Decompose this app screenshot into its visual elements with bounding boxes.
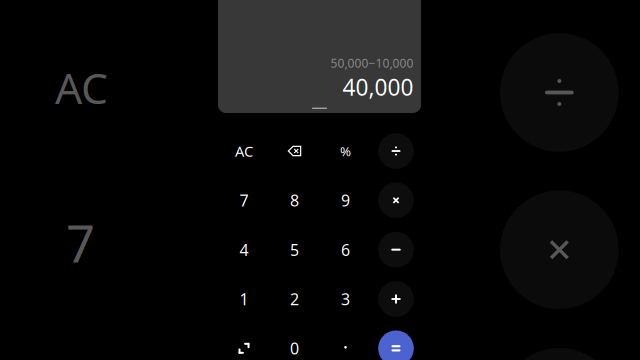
staticText: 5 [290,239,299,260]
staticText: 4 [239,239,248,260]
button[interactable]: 7 [221,177,267,223]
button[interactable]: Plus [378,281,414,317]
button[interactable]: Decimal point [322,324,368,360]
button[interactable]: 2 [271,276,317,322]
button[interactable]: 6 [322,227,368,273]
staticText: % [340,142,351,160]
staticText: 2 [290,288,299,310]
button[interactable]: AC [221,128,267,174]
staticText: 8 [290,190,299,211]
button[interactable]: 8 [271,177,317,223]
button[interactable]: 9 [322,177,368,223]
staticText: AC [55,59,108,116]
staticText: 0 [290,338,299,359]
staticText: 7 [239,190,248,211]
staticText: 7 [66,209,95,276]
button[interactable]: Expand [221,325,267,360]
staticText: AC [235,141,253,161]
button[interactable]: Equals [378,330,414,360]
button[interactable]: Divide [378,133,414,169]
button[interactable]: Multiply [378,182,414,218]
button[interactable]: 1 [221,276,267,322]
staticText: 3 [341,288,350,310]
button[interactable]: 3 [322,276,368,322]
button[interactable]: 0 [271,325,317,360]
button[interactable]: Minus [378,232,414,267]
button[interactable]: Backspace [271,128,317,174]
button[interactable]: % [322,128,368,174]
button[interactable]: 5 [271,227,317,273]
staticText: 50,000−10,000 [330,55,413,71]
button[interactable]: 4 [221,227,267,273]
staticText: 6 [341,239,350,260]
staticText: 9 [341,190,350,211]
staticText: 1 [239,288,248,310]
staticText: 40,000 [342,72,413,102]
